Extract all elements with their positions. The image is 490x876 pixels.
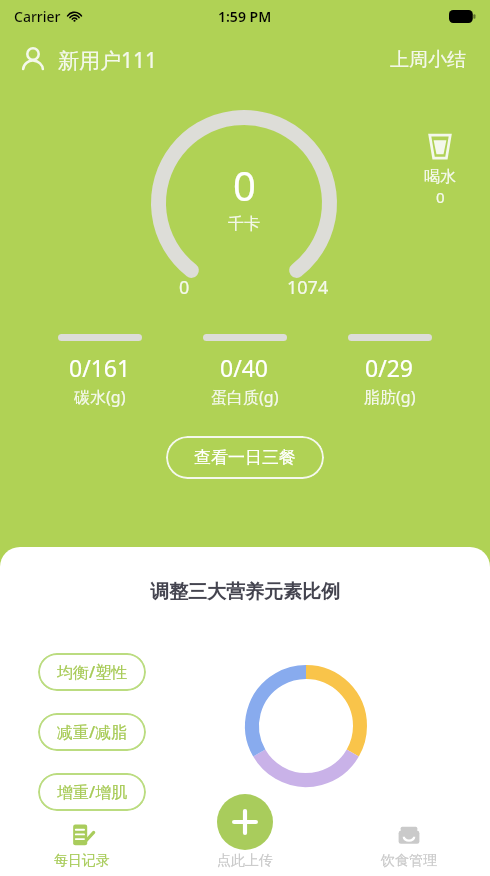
button[interactable]: 每日记录 (0, 823, 164, 876)
staticText: 喝水 (424, 167, 456, 187)
staticText: 新用户111 (58, 46, 158, 75)
staticText: 减重/减脂 (57, 721, 128, 743)
staticText: 0/161 (69, 352, 131, 383)
staticText: 0 (179, 275, 190, 300)
button[interactable]: 均衡/塑性 (38, 653, 146, 691)
button[interactable]: 上周小结 (384, 42, 472, 78)
staticText: 每日记录 (54, 852, 110, 870)
staticText: 蛋白质(g) (211, 386, 279, 408)
staticText: 上周小结 (390, 48, 466, 72)
staticText: 查看一日三餐 (194, 447, 296, 468)
staticText: 千卡 (228, 214, 260, 234)
staticText: 饮食管理 (381, 852, 437, 870)
staticText: 碳水(g) (74, 386, 126, 408)
button[interactable]: 新用户111 (18, 45, 166, 75)
staticText: 调整三大营养元素比例 (150, 580, 340, 604)
staticText: 0/29 (365, 352, 414, 383)
button[interactable]: 喝水 (418, 124, 462, 213)
button[interactable]: 饮食管理 (327, 823, 490, 876)
staticText: 点此上传 (217, 852, 273, 870)
staticText: 0 (436, 187, 445, 207)
staticText: 0 (233, 158, 256, 212)
staticText: 1074 (287, 275, 329, 300)
staticText: 脂肪(g) (364, 386, 416, 408)
button[interactable]: 增重/增肌 (38, 773, 146, 811)
staticText: 1:59 PM (218, 7, 272, 26)
button[interactable]: 查看一日三餐 (166, 436, 324, 479)
staticText: 均衡/塑性 (57, 661, 128, 683)
staticText: 0/40 (220, 352, 269, 383)
button[interactable]: 减重/减脂 (38, 713, 146, 751)
staticText: 增重/增肌 (57, 781, 128, 803)
staticText: Carrier (14, 7, 61, 26)
button[interactable]: 点此上传 (217, 794, 273, 870)
